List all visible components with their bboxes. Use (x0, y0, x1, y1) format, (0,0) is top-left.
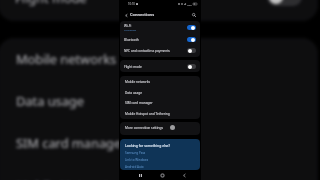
staticText: Flight mode (15, 0, 87, 6)
button[interactable]: Mobile networks (0, 37, 320, 79)
staticText: Mobile Hotspot and Tethering (16, 177, 196, 180)
staticText: Looking for something else? (125, 143, 170, 148)
staticText: 10:10 (128, 2, 135, 6)
button[interactable]: More connection settings (119, 122, 201, 133)
staticText: NFC and contactless payments (124, 49, 170, 53)
staticText: SIM card manager (125, 101, 153, 105)
staticText: Bluetooth (124, 38, 139, 42)
staticText: More connection settings (125, 126, 164, 130)
button[interactable]: NFC and contactless payments (119, 45, 201, 56)
button[interactable]: Mobile networks (119, 76, 201, 87)
button[interactable]: Link to Windows (125, 158, 149, 162)
staticText: Mobile Hotspot and Tethering (125, 112, 170, 116)
button[interactable]: Recents (137, 171, 144, 180)
button[interactable]: Samsung Pass (125, 151, 146, 155)
button[interactable]: SIM card manager (0, 121, 320, 163)
button[interactable]: Search (191, 12, 197, 18)
button[interactable]: Data usage (119, 87, 201, 98)
staticText: 49% (187, 3, 192, 6)
staticText: Connections (130, 12, 155, 17)
button[interactable]: Android Auto (125, 165, 144, 169)
button[interactable]: Mobile Hotspot and Tethering (119, 108, 201, 119)
staticText: Mobile networks (125, 80, 150, 84)
button[interactable]: Flight mode (0, 0, 320, 18)
staticText: Wi-Fi (124, 24, 132, 28)
button[interactable]: Data usage (0, 79, 320, 121)
staticText: Data usage (125, 91, 142, 95)
button[interactable]: Mobile Hotspot and Tethering (0, 164, 320, 180)
button[interactable]: Back (123, 12, 129, 18)
button[interactable]: Home (159, 171, 166, 180)
staticText: Mobile networks (16, 50, 117, 67)
staticText: SIM card manager (16, 134, 127, 151)
staticText: Data usage (16, 92, 84, 109)
button[interactable]: Flight mode (119, 61, 201, 72)
staticText: Connected (124, 28, 137, 31)
button[interactable]: Wi-Fi (119, 20, 201, 35)
button[interactable]: Bluetooth (119, 34, 201, 45)
staticText: Flight mode (124, 65, 142, 69)
button[interactable]: SIM card manager (119, 97, 201, 108)
button[interactable]: Back (181, 171, 188, 180)
